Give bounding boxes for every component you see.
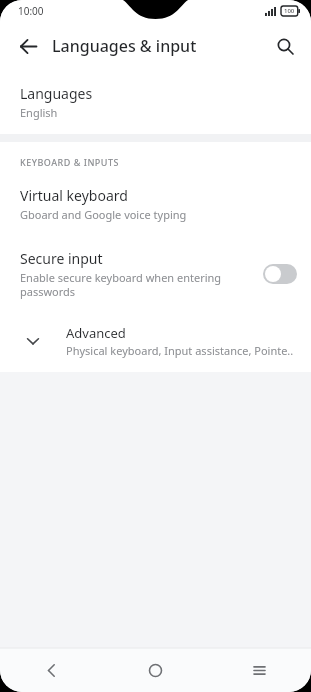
staticText: Languages [20,84,93,103]
staticText: Advanced [66,324,126,342]
staticText: English [20,105,58,120]
button[interactable]: Back [0,648,103,692]
button[interactable]: Home [103,648,207,692]
staticText: Secure input [20,249,103,268]
button[interactable]: Recent apps [207,648,311,692]
staticText: Enable secure keyboard when entering pas… [20,270,253,299]
staticText: Physical keyboard, Input assistance, Poi… [66,343,294,358]
button[interactable]: Back [8,26,48,66]
button[interactable]: Secure input [0,236,311,312]
button[interactable]: Search [265,26,305,66]
staticText: Languages & input [52,35,197,57]
button[interactable]: Advanced [0,312,311,372]
button[interactable]: Virtual keyboard [0,172,311,236]
staticText: KEYBOARD & INPUTS [20,156,120,168]
staticText: Gboard and Google voice typing [20,207,187,222]
staticText: Virtual keyboard [20,186,128,205]
staticText: 10:00 [18,4,44,18]
staticText: 100 [284,7,295,15]
button[interactable]: Languages [0,70,311,134]
button[interactable]: Secure input toggle [263,264,297,284]
